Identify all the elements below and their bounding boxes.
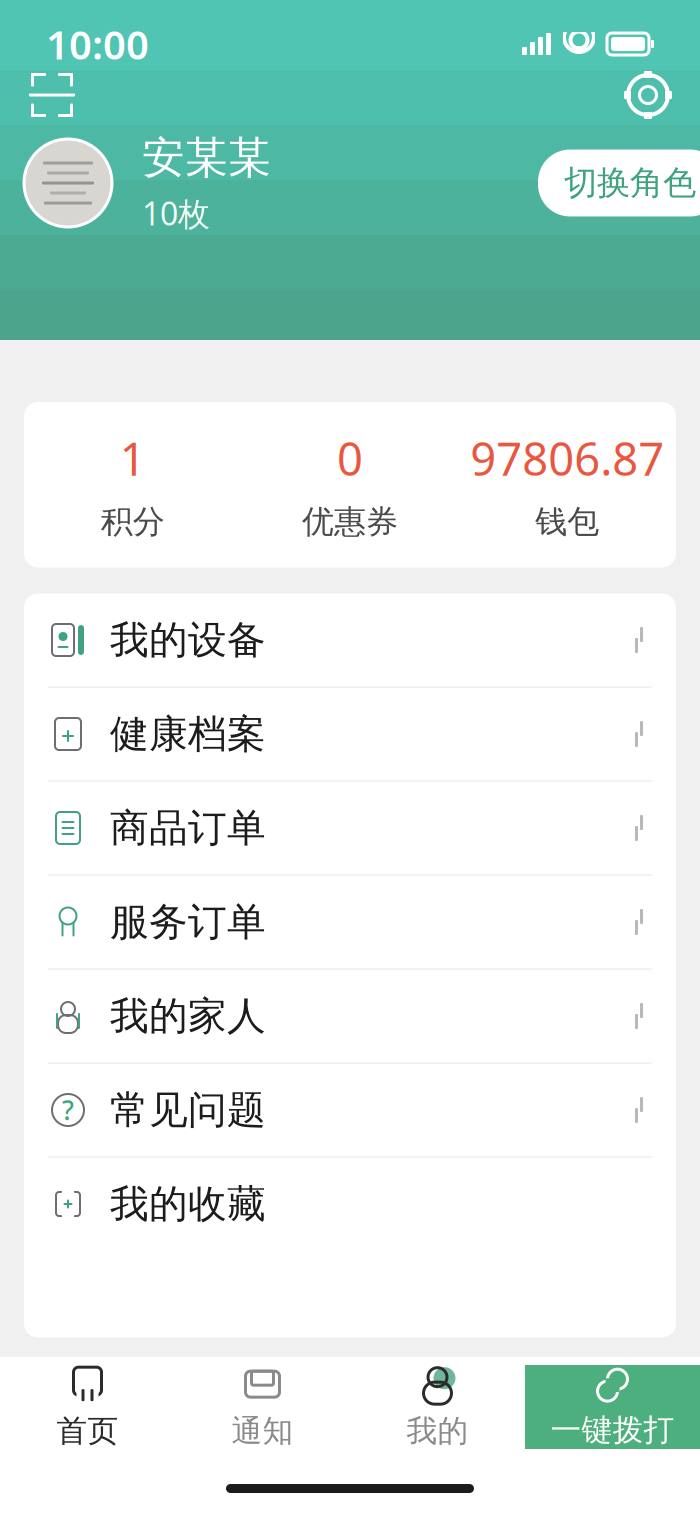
staticText: 我的设备: [110, 616, 266, 664]
button[interactable]: 我的收藏: [24, 1157, 676, 1250]
staticText: 我的收藏: [110, 1180, 266, 1228]
staticText: 10枚: [142, 192, 210, 234]
staticText: 通知: [231, 1412, 293, 1450]
staticText: 一键拨打: [550, 1411, 674, 1449]
button[interactable]: 97806.87: [459, 428, 676, 541]
staticText: 常见问题: [110, 1086, 266, 1134]
button[interactable]: ?: [24, 1063, 676, 1156]
button[interactable]: 安某某: [24, 131, 312, 234]
button[interactable]: 商品订单: [24, 781, 676, 874]
button[interactable]: 一键拨打: [525, 1365, 700, 1449]
staticText: 安某某: [142, 131, 271, 184]
staticText: 健康档案: [110, 710, 266, 758]
staticText: 10:00: [46, 17, 149, 70]
button[interactable]: 1: [24, 428, 241, 541]
button[interactable]: 设置: [620, 67, 676, 123]
staticText: 积分: [101, 502, 165, 541]
button[interactable]: 扫一扫: [24, 67, 80, 123]
staticText: 首页: [56, 1412, 118, 1450]
staticText: 97806.87: [470, 428, 664, 488]
button[interactable]: 通知: [175, 1357, 350, 1457]
staticText: 切换角色: [564, 162, 696, 203]
button[interactable]: 我的设备: [24, 593, 676, 686]
button[interactable]: 我的: [350, 1357, 525, 1457]
staticText: 优惠券: [302, 502, 398, 541]
button[interactable]: 切换角色: [538, 149, 700, 216]
staticText: 1: [120, 428, 146, 488]
button[interactable]: 0: [241, 428, 459, 541]
staticText: 商品订单: [110, 804, 266, 852]
staticText: 钱包: [535, 502, 599, 541]
button[interactable]: 服务订单: [24, 875, 676, 968]
button[interactable]: 首页: [0, 1357, 175, 1457]
button[interactable]: 我的家人: [24, 969, 676, 1062]
staticText: 我的家人: [110, 992, 266, 1040]
button[interactable]: 健康档案: [24, 687, 676, 780]
staticText: ?: [62, 1092, 74, 1128]
staticText: 0: [337, 428, 363, 488]
staticText: 我的: [406, 1412, 468, 1450]
staticText: 服务订单: [110, 898, 266, 946]
